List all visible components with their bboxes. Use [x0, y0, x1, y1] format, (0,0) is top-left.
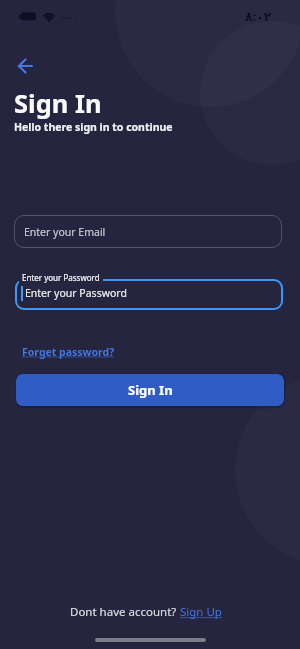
staticText: Enter your Password — [22, 272, 100, 283]
staticText: Enter your Email — [24, 225, 106, 239]
staticText: Sign In — [128, 381, 173, 399]
button[interactable]: Enter your Password — [15, 279, 283, 310]
staticText: Sign In — [14, 86, 102, 121]
staticText: Hello there sign in to continue — [14, 120, 173, 134]
staticText: ٨:٠٢ — [245, 8, 272, 25]
staticText: Sign Up — [180, 604, 222, 620]
button[interactable]: Dont have account? — [70, 604, 222, 620]
button[interactable] — [12, 52, 40, 80]
button[interactable]: Forget password? — [22, 345, 115, 359]
button[interactable]: Enter your Email — [14, 215, 282, 248]
staticText: Enter your Password — [25, 286, 127, 300]
staticText: Dont have account? — [70, 604, 180, 620]
button[interactable]: Sign In — [16, 374, 284, 406]
